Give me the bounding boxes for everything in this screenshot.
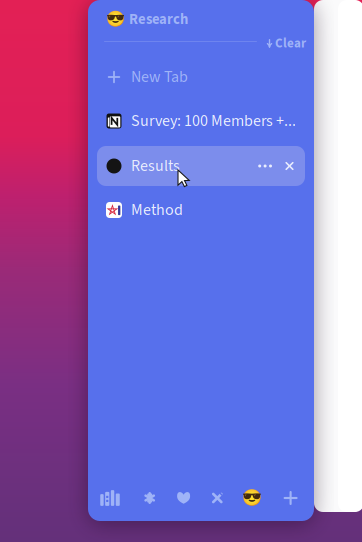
staticText: Research bbox=[129, 9, 188, 30]
button[interactable]: Clear bbox=[264, 35, 314, 51]
button[interactable]: New Tab bbox=[97, 57, 305, 97]
staticText: New Tab bbox=[131, 66, 188, 88]
staticText: Method bbox=[131, 199, 183, 221]
button[interactable]: New tab bbox=[276, 483, 306, 513]
staticText: 😎 bbox=[106, 9, 125, 27]
button[interactable]: Library bbox=[95, 483, 125, 513]
button[interactable]: Method bbox=[97, 190, 305, 230]
staticText: Clear bbox=[275, 34, 306, 53]
button[interactable]: Split view bbox=[202, 483, 232, 513]
staticText: Results bbox=[131, 155, 180, 177]
button[interactable]: 😎 bbox=[106, 5, 226, 31]
button[interactable]: Favorites bbox=[169, 483, 199, 513]
button[interactable]: Survey: 100 Members +... bbox=[97, 101, 305, 141]
button[interactable]: Results bbox=[97, 146, 305, 186]
staticText: Survey: 100 Members +... bbox=[131, 110, 296, 132]
button[interactable]: Spaces bbox=[135, 483, 165, 513]
button[interactable]: Profile bbox=[237, 483, 267, 513]
staticText: 😎 bbox=[242, 489, 262, 507]
